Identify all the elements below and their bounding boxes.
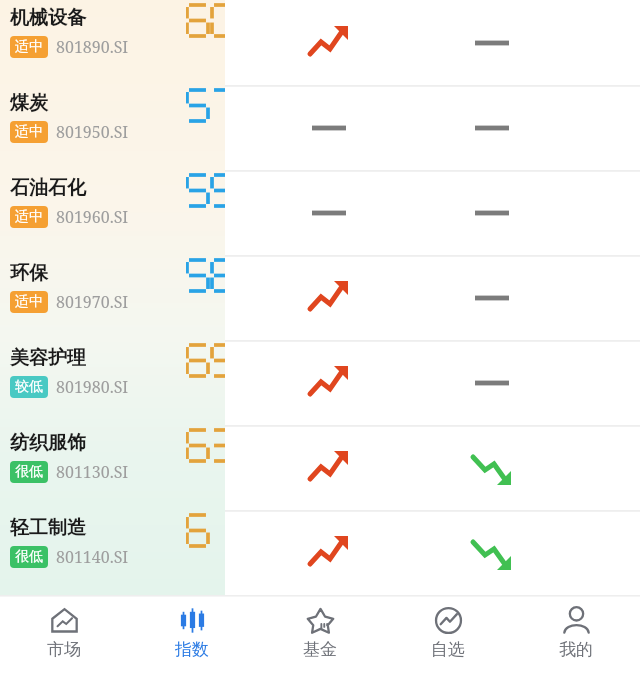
other: Flat — [469, 20, 515, 66]
staticText: 适中 — [15, 38, 43, 56]
button[interactable]: 市场 — [0, 595, 128, 673]
staticText: 指数 — [175, 639, 209, 660]
other: Trending up — [306, 275, 352, 321]
staticText: 市场 — [47, 639, 81, 660]
staticText: 801980.SI — [56, 376, 129, 398]
staticText: 煤炭 — [10, 91, 48, 115]
other: Trending down — [469, 530, 515, 576]
staticText: 801970.SI — [56, 291, 129, 313]
button[interactable]: 自选 — [384, 595, 512, 673]
staticText: 自选 — [431, 639, 465, 660]
staticText: 石油石化 — [10, 176, 86, 200]
button[interactable]: 指数 — [128, 595, 256, 673]
other: Flat — [469, 360, 515, 406]
staticText: 801960.SI — [56, 206, 129, 228]
other: Flat — [469, 190, 515, 236]
other: Trending up — [306, 530, 352, 576]
staticText: 很低 — [15, 463, 43, 481]
staticText: 801140.SI — [56, 546, 129, 568]
button[interactable]: 环保 — [0, 255, 640, 340]
staticText: 适中 — [15, 123, 43, 141]
staticText: 我的 — [559, 639, 593, 660]
other: Flat — [306, 190, 352, 236]
other: Flat — [469, 105, 515, 151]
staticText: 801130.SI — [56, 461, 129, 483]
staticText: 机械设备 — [10, 6, 86, 30]
other: Flat — [306, 105, 352, 151]
other: Trending up — [306, 445, 352, 491]
other: Trending up — [306, 360, 352, 406]
staticText: 环保 — [10, 261, 48, 285]
button[interactable]: 机械设备 — [0, 0, 640, 85]
button[interactable]: 纺织服饰 — [0, 425, 640, 510]
staticText: 801890.SI — [56, 36, 129, 58]
staticText: 很低 — [15, 548, 43, 566]
other: Flat — [469, 275, 515, 321]
staticText: 801950.SI — [56, 121, 129, 143]
button[interactable]: 我的 — [512, 595, 640, 673]
staticText: 基金 — [303, 639, 337, 660]
staticText: 轻工制造 — [10, 516, 86, 540]
staticText: 适中 — [15, 293, 43, 311]
button[interactable]: 石油石化 — [0, 170, 640, 255]
staticText: 纺织服饰 — [10, 431, 86, 455]
staticText: 适中 — [15, 208, 43, 226]
button[interactable]: 基金 — [256, 595, 384, 673]
other: Trending down — [469, 445, 515, 491]
button[interactable]: 美容护理 — [0, 340, 640, 425]
button[interactable]: 轻工制造 — [0, 510, 640, 595]
other: Trending up — [306, 20, 352, 66]
staticText: 较低 — [15, 378, 43, 396]
staticText: 美容护理 — [10, 346, 86, 370]
button[interactable]: 煤炭 — [0, 85, 640, 170]
